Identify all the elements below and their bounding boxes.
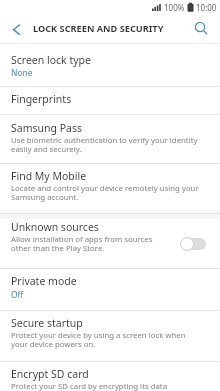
staticText: 100% <box>164 2 185 13</box>
button[interactable]: Unknown sources <box>0 219 220 268</box>
button[interactable]: Encrypt SD card <box>0 362 220 391</box>
staticText: Off <box>11 289 24 300</box>
staticText: Unknown sources <box>11 220 99 234</box>
button[interactable]: Screen lock type <box>0 44 220 86</box>
staticText: Samsung Pass <box>11 121 82 135</box>
staticText: Use biometric authentication to verify y… <box>11 135 198 154</box>
staticText: 10:00 <box>196 2 217 13</box>
staticText: Secure startup <box>11 316 83 330</box>
staticText: Encrypt SD card <box>11 367 89 381</box>
staticText: Fingerprints <box>11 92 72 106</box>
button[interactable]: Private mode <box>0 269 220 310</box>
staticText: None <box>11 67 33 78</box>
button[interactable]: Find My Mobile <box>0 164 220 210</box>
staticText: Protect your SD card by encrypting its d… <box>11 381 168 391</box>
staticText: Protect your device by using a screen lo… <box>11 330 186 349</box>
staticText: Allow installation of apps from sources … <box>11 234 153 253</box>
staticText: LOCK SCREEN AND SECURITY <box>33 22 164 35</box>
staticText: Screen lock type <box>11 53 91 67</box>
button[interactable] <box>180 236 206 251</box>
button[interactable] <box>6 19 26 39</box>
staticText: Locate and control your device remotely … <box>11 183 199 202</box>
button[interactable]: Samsung Pass <box>0 115 220 163</box>
staticText: Find My Mobile <box>11 169 87 183</box>
button[interactable]: Fingerprints <box>0 87 220 114</box>
button[interactable]: Secure startup <box>0 311 220 361</box>
staticText: Private mode <box>11 274 77 288</box>
button[interactable] <box>192 19 212 39</box>
